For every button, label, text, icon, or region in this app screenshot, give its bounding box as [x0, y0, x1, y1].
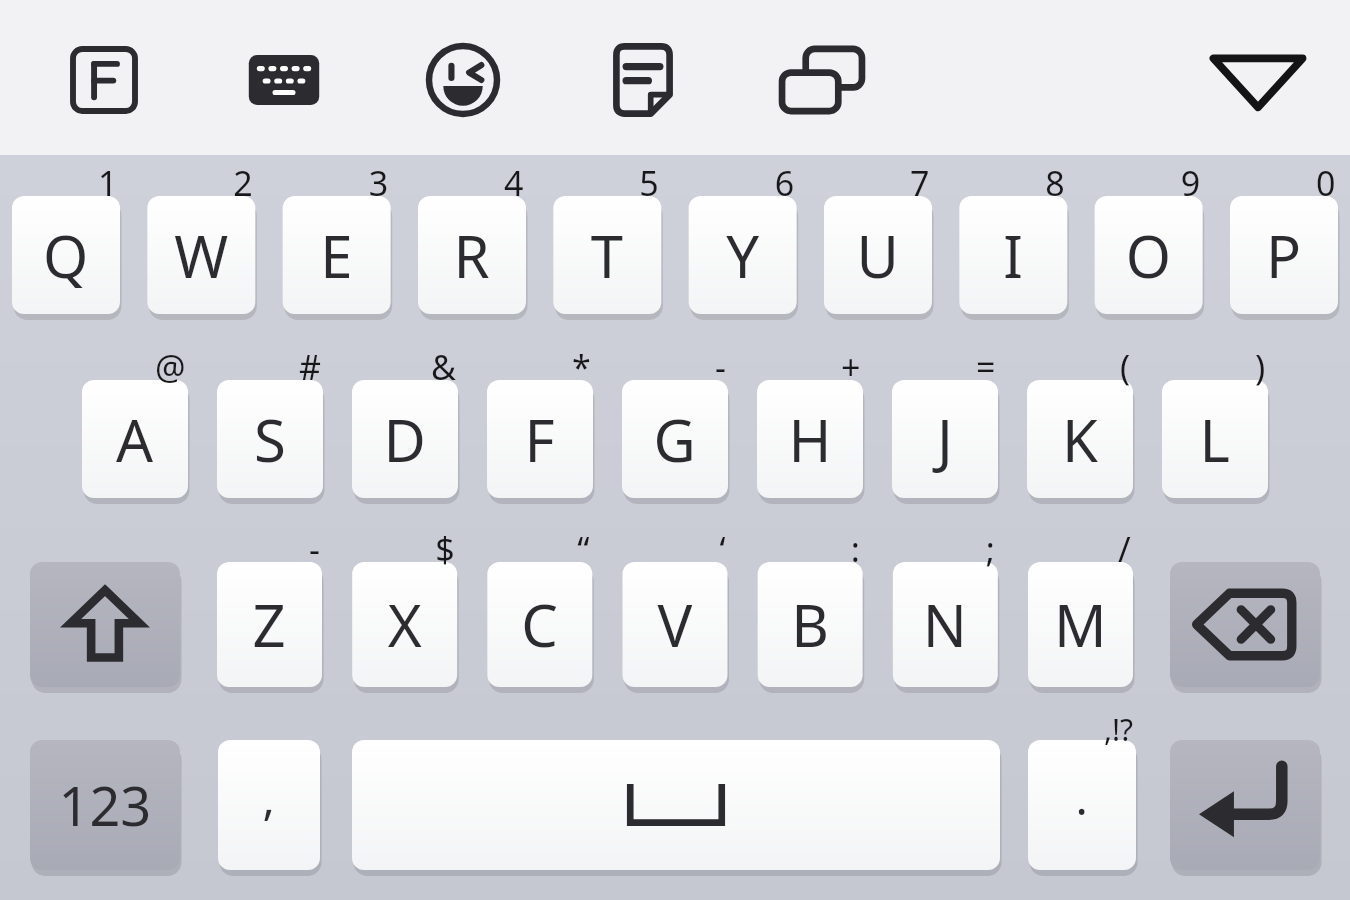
- button[interactable]: Shift: [30, 562, 180, 687]
- button[interactable]: A: [82, 380, 188, 498]
- button[interactable]: G: [622, 380, 728, 498]
- button[interactable]: P: [1230, 196, 1338, 314]
- button[interactable]: M: [1028, 562, 1133, 687]
- button[interactable]: I: [959, 196, 1067, 314]
- button[interactable]: Enter: [1170, 740, 1320, 870]
- button[interactable]: T: [553, 196, 661, 314]
- button[interactable]: V: [623, 562, 728, 687]
- button[interactable]: J: [892, 380, 998, 498]
- button[interactable]: D: [352, 380, 458, 498]
- button[interactable]: S: [217, 380, 323, 498]
- button[interactable]: Stickers: [593, 28, 693, 132]
- button[interactable]: K: [1027, 380, 1133, 498]
- button[interactable]: O: [1095, 196, 1203, 314]
- button[interactable]: W: [147, 196, 255, 314]
- button[interactable]: Backspace: [1170, 562, 1320, 687]
- button[interactable]: F: [487, 380, 593, 498]
- button[interactable]: Y: [689, 196, 797, 314]
- button[interactable]: Q: [12, 196, 120, 314]
- button[interactable]: E: [283, 196, 391, 314]
- button[interactable]: H: [757, 380, 863, 498]
- button[interactable]: Period: [1028, 740, 1136, 870]
- button[interactable]: Space: [352, 740, 1000, 870]
- button[interactable]: U: [824, 196, 932, 314]
- button[interactable]: B: [758, 562, 863, 687]
- button[interactable]: Emoji: [413, 28, 513, 132]
- button[interactable]: C: [487, 562, 592, 687]
- button[interactable]: L: [1162, 380, 1268, 498]
- button[interactable]: X: [352, 562, 457, 687]
- button[interactable]: Z: [217, 562, 322, 687]
- button[interactable]: Font: [54, 28, 154, 132]
- button[interactable]: Keyboard settings: [234, 28, 334, 132]
- button[interactable]: N: [893, 562, 998, 687]
- button[interactable]: Comma: [218, 740, 320, 870]
- button[interactable]: R: [418, 196, 526, 314]
- button[interactable]: Clipboard: [772, 28, 872, 132]
- button[interactable]: Numbers: [30, 740, 180, 870]
- button[interactable]: Hide keyboard: [1203, 28, 1313, 132]
